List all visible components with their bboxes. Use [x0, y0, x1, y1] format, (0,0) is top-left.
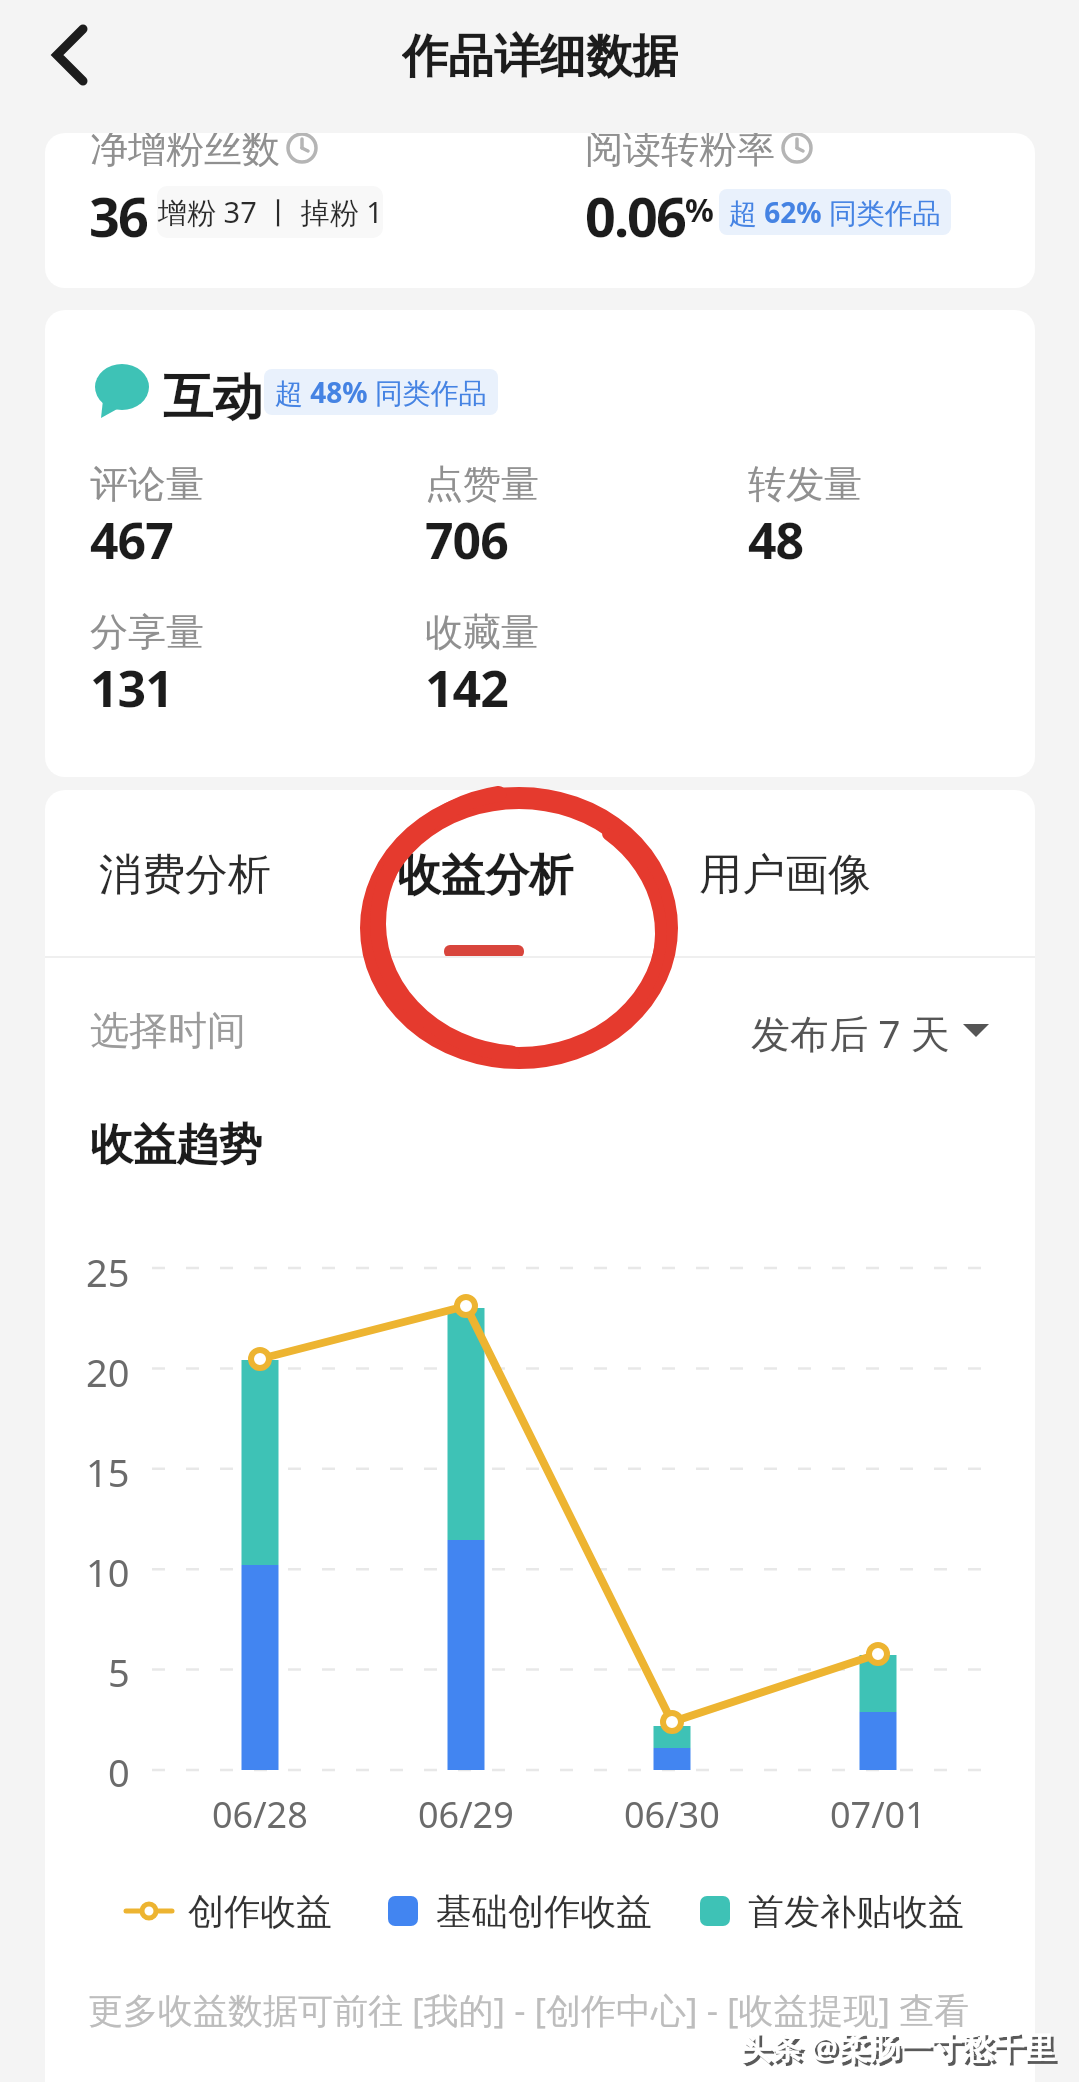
staticText: 467: [90, 506, 173, 564]
staticText: %: [685, 188, 714, 232]
button[interactable]: 超 62% 同类作品: [719, 189, 951, 235]
staticText: 增粉 37 丨 掉粉 1: [158, 192, 383, 232]
staticText: 706: [425, 506, 508, 564]
button[interactable]: 消费分析: [75, 835, 295, 915]
staticText: 收益分析: [397, 848, 573, 903]
staticText: 0: [108, 1746, 130, 1792]
button[interactable]: 超 48% 同类作品: [264, 369, 498, 415]
staticText: 选择时间: [90, 1006, 246, 1054]
staticText: 36: [89, 179, 147, 241]
staticText: 收益趋势: [90, 1118, 262, 1170]
staticText: 阅读转粉率: [585, 133, 775, 167]
staticText: 作品详细数据: [402, 28, 678, 84]
button[interactable]: 发布后 7 天: [700, 1006, 950, 1054]
staticText: 基础创作收益: [436, 1889, 652, 1934]
staticText: 转发量: [748, 460, 862, 504]
staticText: 06/28: [212, 1790, 308, 1836]
button[interactable]: 增粉 37 丨 掉粉 1: [157, 186, 383, 238]
staticText: 06/29: [418, 1790, 514, 1836]
staticText: 25: [86, 1246, 130, 1292]
staticText: 消费分析: [99, 848, 271, 902]
button[interactable]: [40, 25, 100, 85]
staticText: 分享量: [90, 608, 204, 652]
staticText: 131: [90, 654, 173, 712]
staticText: 超 62% 同类作品: [729, 193, 941, 231]
staticText: 头条 @柔肠一寸愁千里: [743, 2029, 1058, 2069]
staticText: 48: [748, 506, 804, 564]
staticText: 5: [108, 1646, 130, 1692]
staticText: 点赞量: [425, 460, 539, 504]
staticText: 头条 @柔肠一寸愁千里: [740, 2026, 1055, 2066]
button[interactable]: 用户画像: [675, 835, 895, 915]
staticText: 06/30: [624, 1790, 720, 1836]
staticText: 首发补贴收益: [748, 1889, 964, 1934]
staticText: 发布后 7 天: [751, 1006, 950, 1054]
staticText: 20: [86, 1346, 130, 1392]
staticText: 15: [86, 1446, 130, 1492]
staticText: 评论量: [90, 460, 204, 504]
staticText: 07/01: [830, 1790, 926, 1836]
staticText: 142: [425, 654, 508, 712]
staticText: 0.06: [585, 179, 685, 241]
staticText: 10: [86, 1546, 130, 1592]
staticText: 用户画像: [699, 848, 871, 902]
staticText: 互动: [163, 366, 263, 422]
staticText: 收藏量: [425, 608, 539, 652]
staticText: 更多收益数据可前往 [我的] - [创作中心] - [收益提现] 查看: [88, 1986, 970, 2034]
button[interactable]: 收益分析: [385, 835, 585, 915]
staticText: 超 48% 同类作品: [275, 373, 487, 411]
staticText: 净增粉丝数: [90, 133, 280, 167]
staticText: 创作收益: [188, 1889, 332, 1934]
